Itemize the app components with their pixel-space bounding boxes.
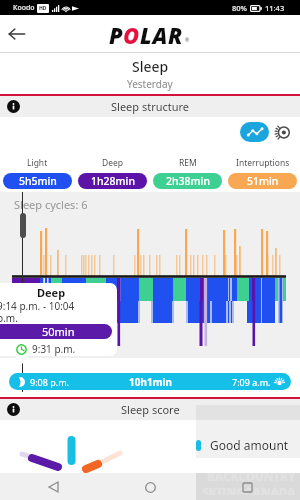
staticText: Good amount: [210, 437, 289, 453]
staticText: 1h28min: [91, 174, 135, 188]
button[interactable]: Back: [40, 474, 66, 500]
staticText: 80%: [232, 3, 247, 13]
staticText: REM: [179, 157, 197, 169]
staticText: Sleep score: [121, 402, 180, 417]
staticText: SKIINGCANADA: [202, 484, 296, 495]
button[interactable]: 50min: [0, 324, 112, 339]
staticText: 9:08 p.m.: [30, 376, 69, 388]
staticText: Yesterday: [127, 77, 173, 91]
staticText: 7:09 a.m.: [232, 376, 271, 388]
button[interactable]: 1h28min: [78, 173, 147, 189]
button[interactable]: Back: [6, 23, 28, 45]
staticText: P: [109, 20, 124, 50]
staticText: Sleep cycles: 6: [14, 197, 88, 212]
staticText: 9:31 p.m.: [32, 342, 76, 356]
staticText: HD: [39, 5, 47, 12]
button[interactable]: 51min: [228, 173, 297, 189]
staticText: LAR: [140, 20, 184, 50]
button[interactable]: 9:08 p.m.: [9, 373, 291, 390]
button[interactable]: Sleep score: [0, 399, 300, 420]
button[interactable]: Home: [137, 474, 163, 500]
staticText: 10h1min: [69, 375, 232, 389]
staticText: Deep: [102, 157, 124, 169]
staticText: 50min: [42, 324, 75, 339]
staticText: Koodo: [13, 3, 35, 13]
button[interactable]: Chart view: [240, 122, 269, 142]
staticText: Deep: [37, 285, 66, 300]
staticText: Light: [27, 157, 48, 169]
staticText: 11:43: [265, 3, 285, 13]
staticText: Sleep: [132, 57, 169, 76]
staticText: Sleep structure: [111, 99, 190, 114]
staticText: O: [123, 20, 141, 50]
button[interactable]: 2h38min: [153, 173, 222, 189]
staticText: ®: [185, 37, 190, 44]
button[interactable]: Toggle details: [274, 124, 291, 141]
staticText: 5h5min: [19, 174, 57, 188]
staticText: Interruptions: [236, 157, 290, 169]
button[interactable]: Recents: [234, 474, 260, 500]
staticText: 2h38min: [166, 174, 210, 188]
button[interactable]: 5h5min: [3, 173, 72, 189]
staticText: BACKCOUNTRY: [207, 468, 296, 484]
staticText: 51min: [247, 174, 279, 188]
staticText: 9:14 p.m. - 10:04 p.m.: [0, 299, 75, 325]
button[interactable]: Sleep structure: [0, 96, 300, 117]
